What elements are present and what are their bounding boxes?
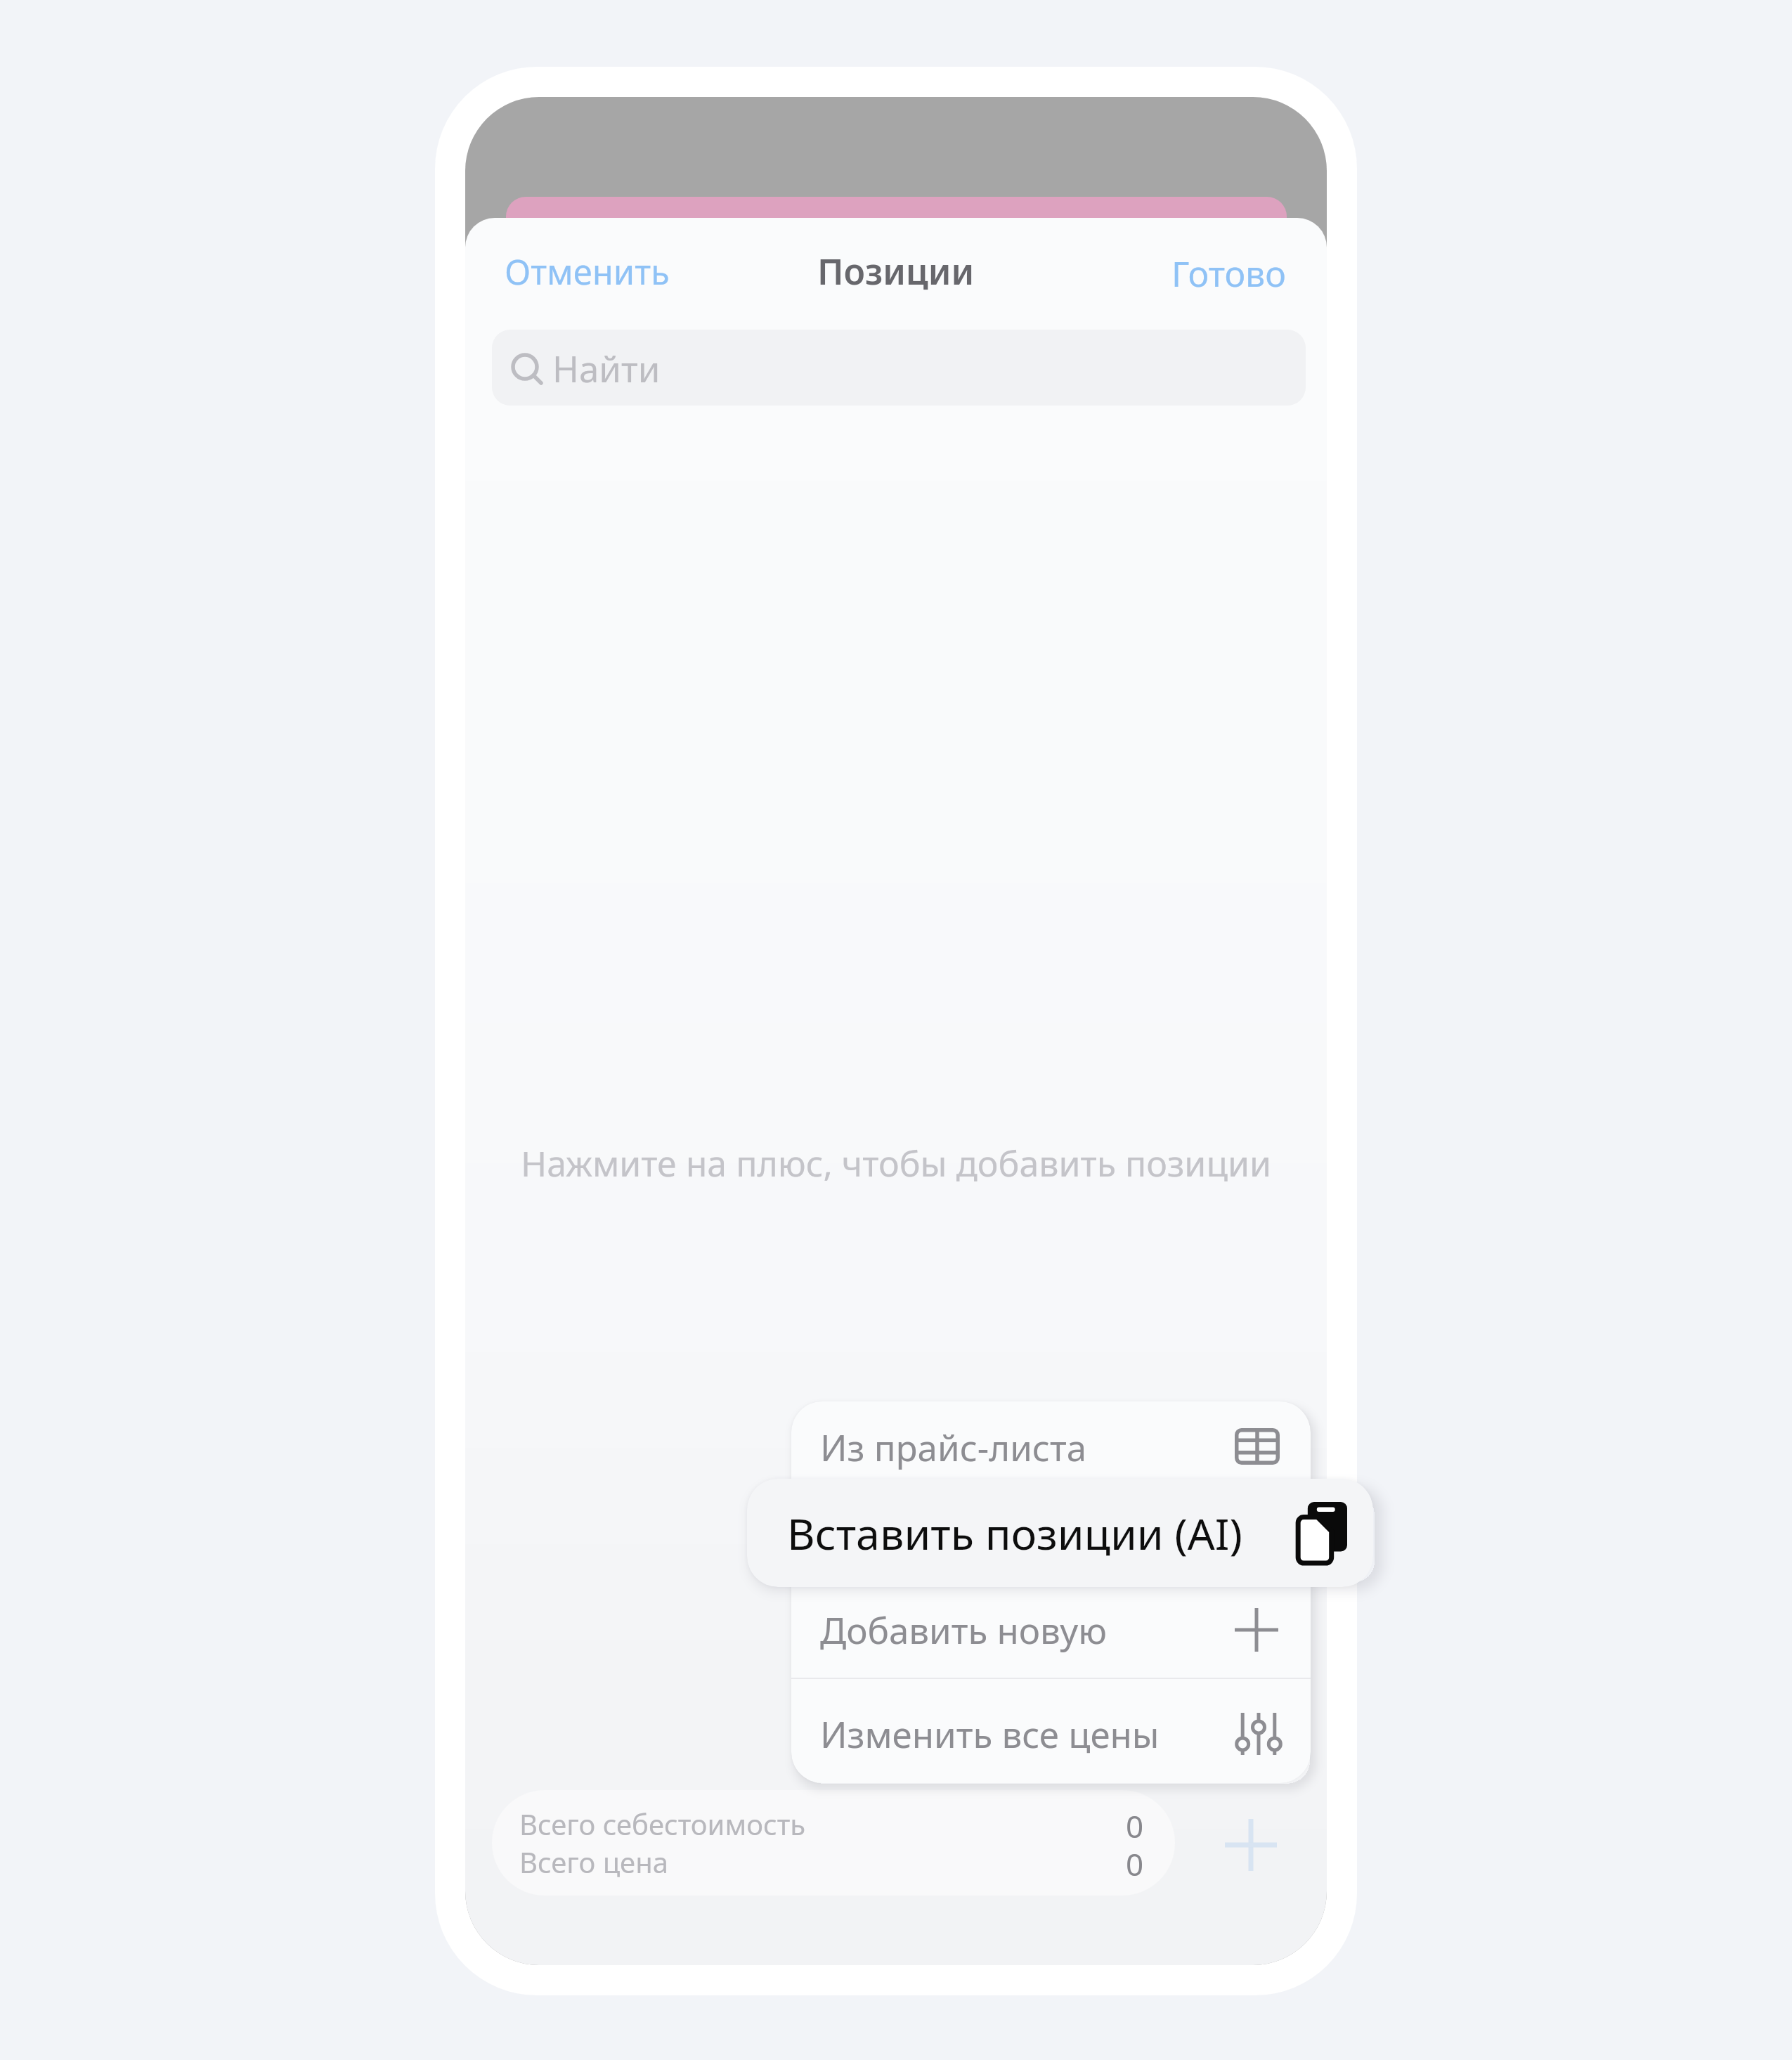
button[interactable]: Из прайс-листа (791, 1401, 1311, 1491)
staticText: Всего себестоимость (519, 1805, 806, 1843)
staticText: Позиции (817, 247, 975, 295)
staticText: Отменить (505, 248, 670, 295)
staticText: Добавить новую (820, 1605, 1108, 1654)
button[interactable]: Добавить новую (791, 1581, 1311, 1678)
button[interactable]: Всего себестоимость (492, 1790, 1175, 1896)
button[interactable]: Вставить позиции (AI) (747, 1479, 1373, 1587)
staticText: Нажмите на плюс, чтобы добавить позиции (521, 1139, 1272, 1187)
staticText: Готово (1171, 250, 1286, 293)
staticText: Найти (552, 344, 661, 392)
staticText: Всего цена (519, 1843, 668, 1881)
button[interactable]: Готово (1157, 240, 1300, 303)
staticText: Изменить все цены (820, 1709, 1160, 1758)
button[interactable]: Найти (492, 330, 1306, 406)
staticText: 0 (1126, 1843, 1144, 1881)
staticText: Из прайс-листа (820, 1423, 1087, 1471)
button[interactable]: Отменить (491, 240, 684, 303)
staticText: Вставить позиции (AI) (787, 1504, 1242, 1562)
button[interactable]: Добавить позицию (1197, 1792, 1304, 1898)
staticText: 0 (1126, 1805, 1144, 1843)
button[interactable]: Изменить все цены (791, 1684, 1311, 1783)
